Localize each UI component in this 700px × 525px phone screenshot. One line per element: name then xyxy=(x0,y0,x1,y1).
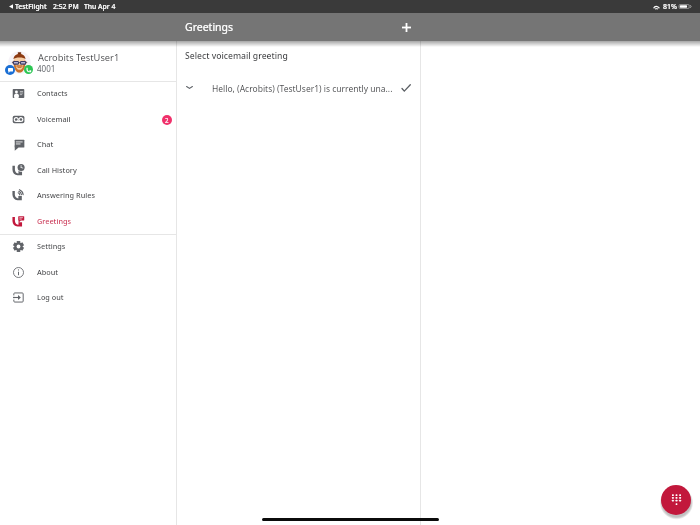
staticText: Greetings xyxy=(37,216,72,226)
button[interactable]: About xyxy=(0,260,176,286)
staticText: About xyxy=(37,267,59,277)
staticText: 81% xyxy=(663,2,677,12)
staticText: Acrobits TestUser1 xyxy=(38,51,120,64)
button[interactable]: Answering Rules xyxy=(0,183,176,209)
staticText: Contacts xyxy=(37,88,68,98)
staticText: Thu Apr 4 xyxy=(84,2,116,11)
staticText: 4001 xyxy=(37,63,56,74)
staticText: Call History xyxy=(37,165,77,175)
button[interactable]: Log out xyxy=(0,285,176,311)
staticText: Settings xyxy=(37,241,66,251)
button[interactable]: Greetings xyxy=(0,209,176,235)
button[interactable]: Voicemail xyxy=(0,107,176,133)
button[interactable]: Dialpad xyxy=(661,485,691,515)
button[interactable]: Chat xyxy=(0,132,176,158)
staticText: 2 xyxy=(165,116,169,124)
button[interactable]: Add greeting xyxy=(394,15,418,39)
button[interactable]: Acrobits TestUser1 xyxy=(0,41,176,81)
staticText: Answering Rules xyxy=(37,190,95,200)
staticText: Voicemail xyxy=(37,114,71,124)
button[interactable]: Contacts xyxy=(0,81,176,107)
staticText: Select voicemail greeting xyxy=(185,50,288,62)
staticText: Greetings xyxy=(185,20,234,34)
staticText: 2:52 PM xyxy=(53,2,79,11)
staticText: TestFlight xyxy=(15,2,47,11)
button[interactable]: Settings xyxy=(0,234,176,260)
button[interactable]: Call History xyxy=(0,158,176,184)
button[interactable]: Hello, (Acrobits) (TestUser1) is current… xyxy=(177,75,420,101)
staticText: Hello, (Acrobits) (TestUser1) is current… xyxy=(212,83,394,95)
staticText: Log out xyxy=(37,292,64,302)
staticText: Chat xyxy=(37,139,54,149)
